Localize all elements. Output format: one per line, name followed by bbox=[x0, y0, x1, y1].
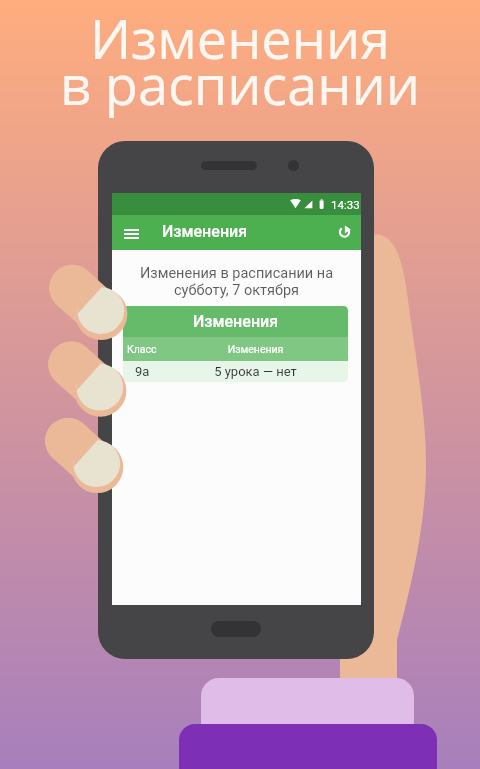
button[interactable]: Обновить bbox=[329, 217, 359, 247]
staticText: 9а bbox=[135, 364, 163, 379]
staticText: Изменения в расписании на субботу, 7 окт… bbox=[112, 265, 361, 298]
button[interactable]: Меню bbox=[116, 219, 146, 249]
staticText: Изменения bbox=[162, 222, 248, 241]
staticText: Изменения в расписании bbox=[0, 1, 480, 121]
staticText: Изменения bbox=[163, 343, 348, 355]
staticText: 14:33 bbox=[331, 198, 360, 211]
staticText: Класс bbox=[127, 343, 163, 355]
button[interactable]: 9а bbox=[123, 361, 348, 382]
staticText: Изменения bbox=[193, 312, 279, 331]
staticText: 5 урока — нет bbox=[163, 364, 348, 379]
